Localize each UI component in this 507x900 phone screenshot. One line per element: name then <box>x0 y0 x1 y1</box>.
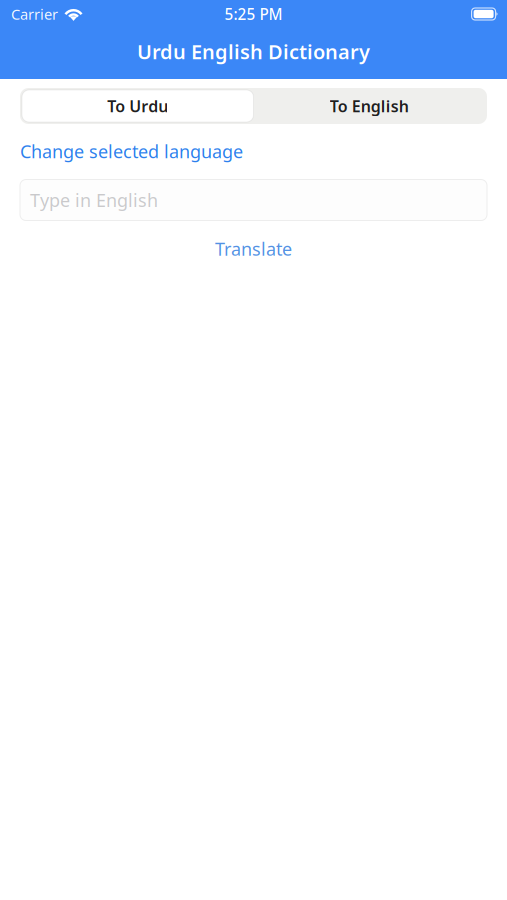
staticText: Type in English <box>30 188 158 212</box>
button[interactable]: To Urdu <box>22 90 253 122</box>
staticText: To English <box>330 95 409 117</box>
staticText: Change selected language <box>20 139 243 163</box>
button[interactable]: Translate <box>0 236 507 261</box>
button[interactable]: Type in English <box>20 179 487 220</box>
staticText: To Urdu <box>107 95 168 117</box>
staticText: Carrier <box>11 4 58 24</box>
button[interactable]: Change selected language <box>20 139 487 163</box>
button[interactable]: To English <box>253 90 485 122</box>
staticText: Translate <box>215 236 292 261</box>
staticText: 5:25 PM <box>224 4 282 24</box>
staticText: Urdu English Dictionary <box>137 38 370 65</box>
